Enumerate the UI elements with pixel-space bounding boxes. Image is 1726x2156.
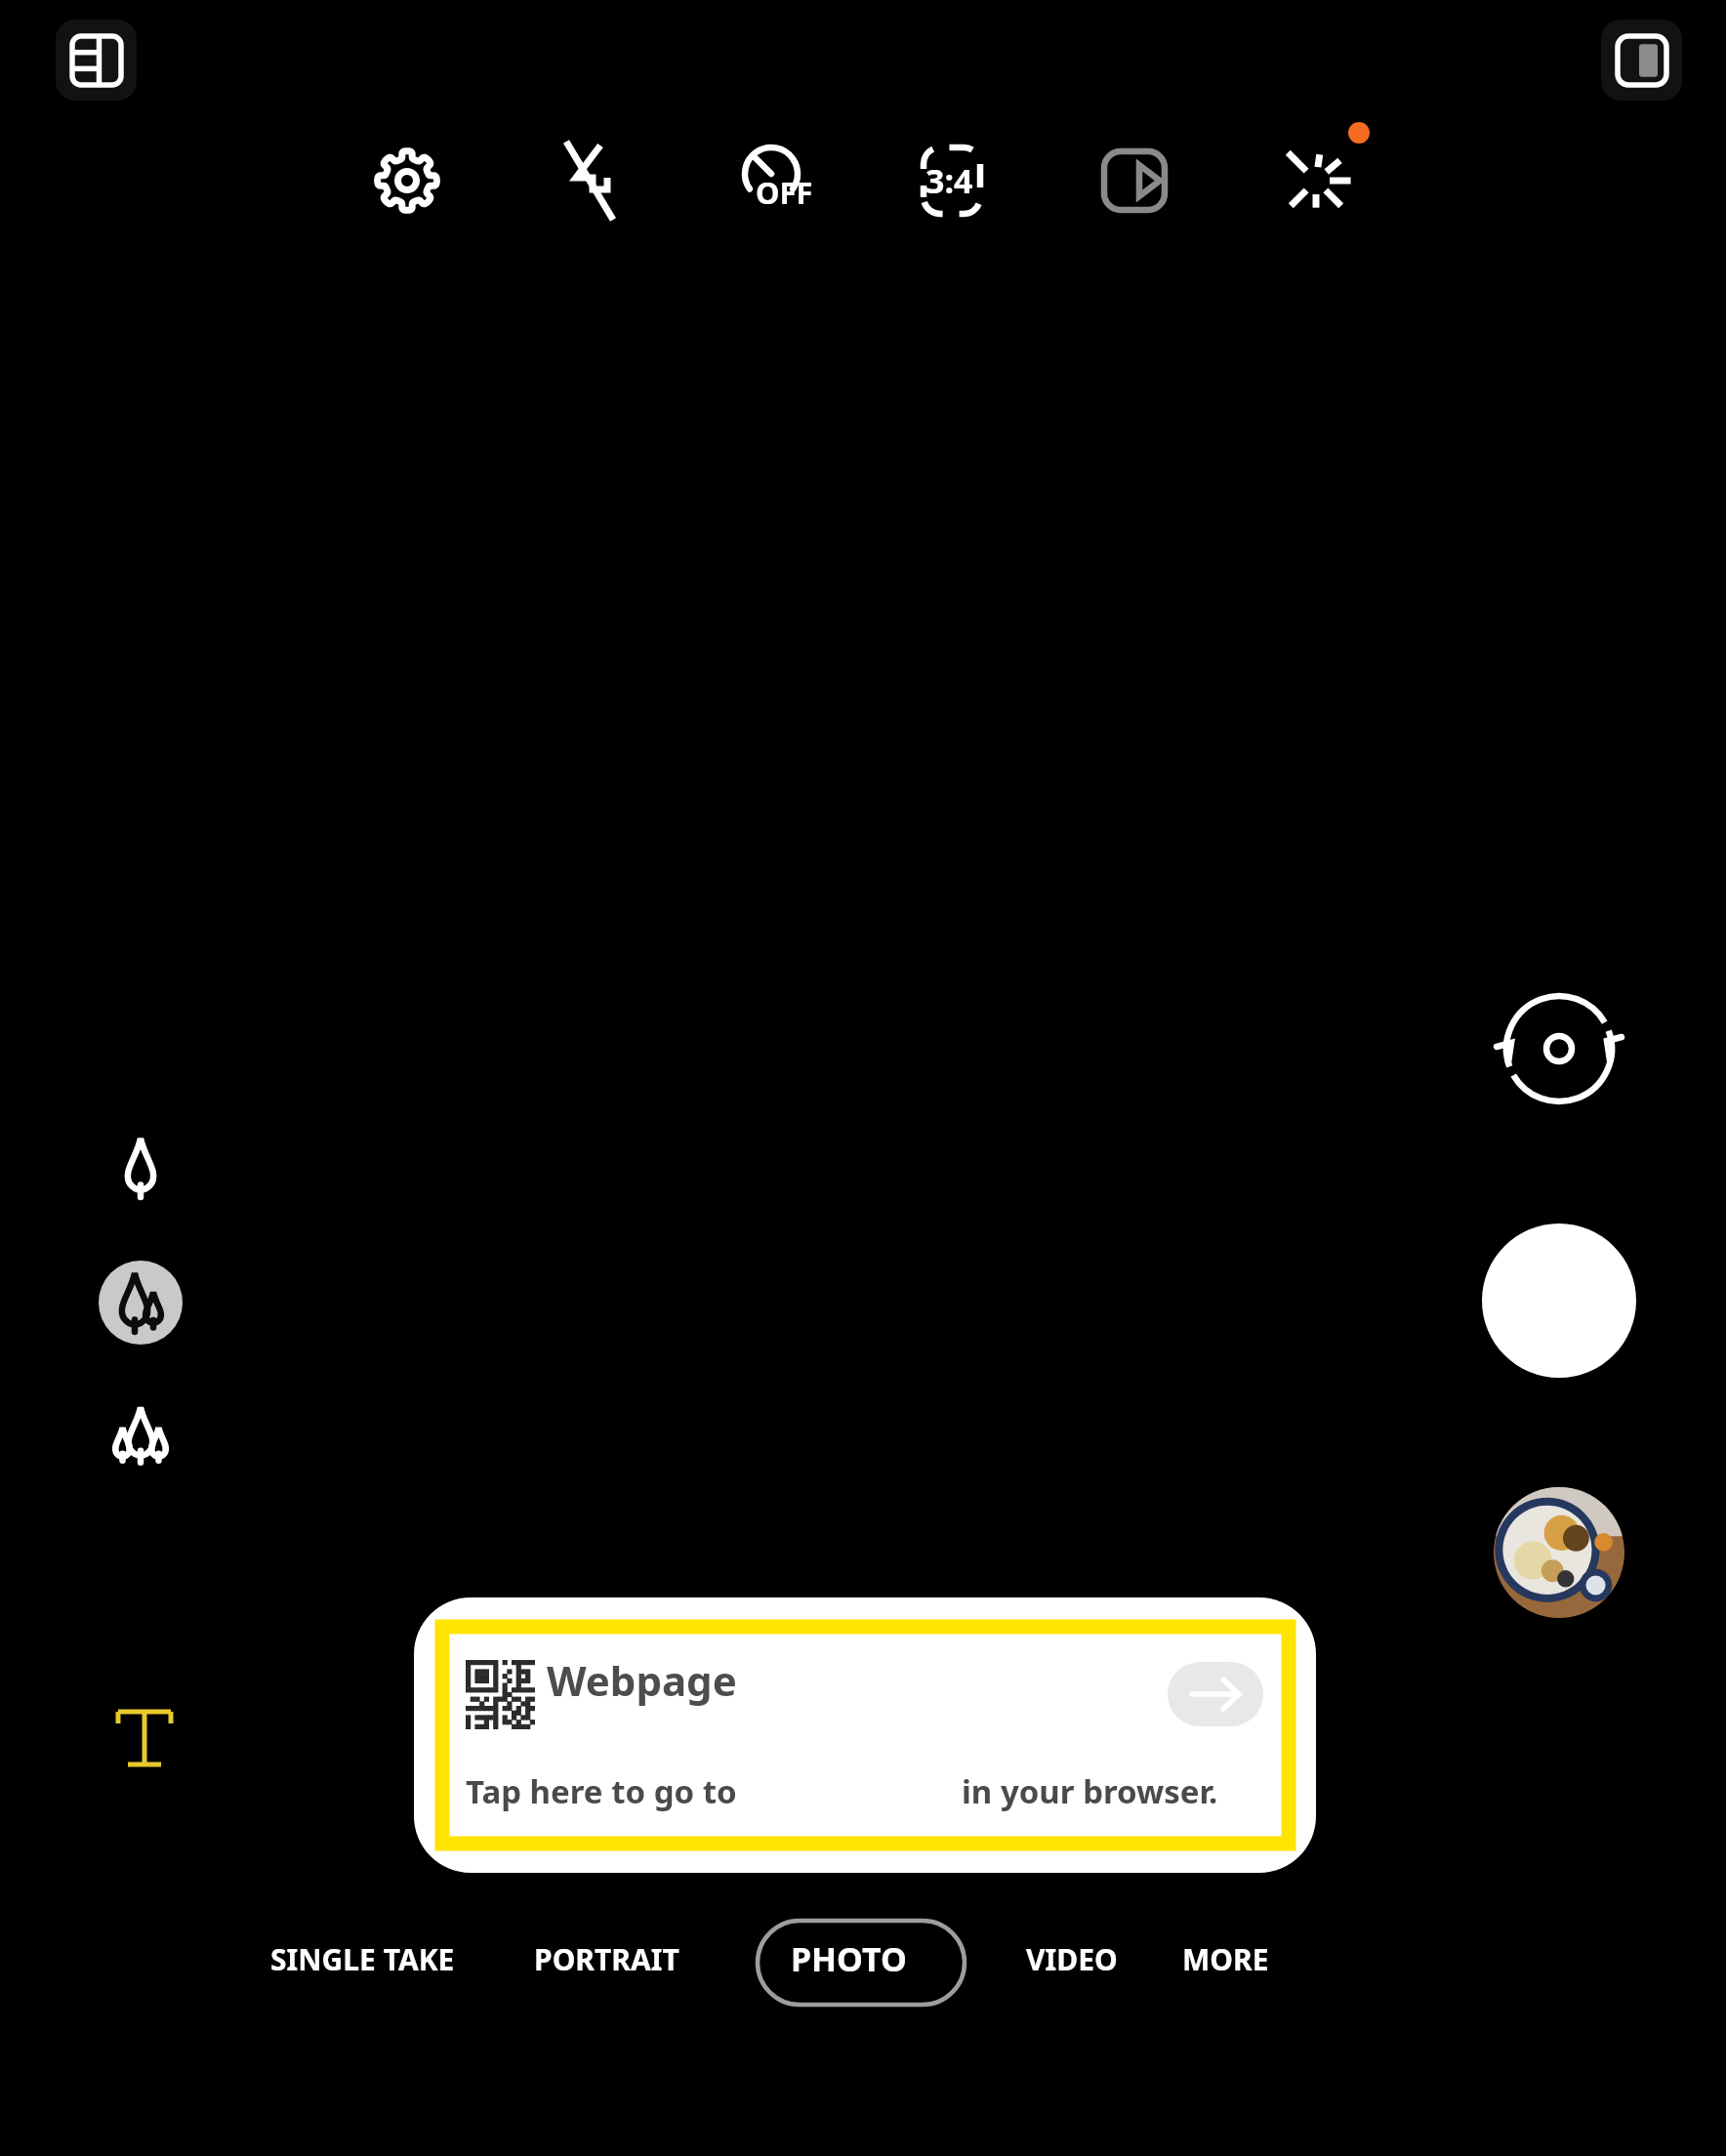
staticText: OFF — [756, 172, 813, 213]
button[interactable] — [414, 1597, 1316, 1873]
staticText: PHOTO — [791, 1936, 907, 1981]
button[interactable] — [758, 1919, 965, 2007]
button[interactable]: Scene optimizer — [1261, 115, 1378, 234]
button[interactable]: Switch camera — [1485, 974, 1633, 1123]
staticText: in your browser. — [962, 1769, 1218, 1813]
staticText: VIDEO — [1026, 1939, 1118, 1979]
button[interactable]: Panel view — [1587, 8, 1703, 113]
button[interactable]: Telephoto zoom — [88, 1385, 193, 1490]
staticText: PORTRAIT — [534, 1939, 679, 1979]
button[interactable]: Timer off — [718, 127, 825, 234]
button[interactable]: Layout options — [39, 8, 154, 113]
button[interactable]: Flash off — [536, 127, 643, 234]
button[interactable] — [1160, 1912, 1298, 2011]
button[interactable]: Open webpage — [1168, 1662, 1263, 1726]
button[interactable]: Gallery — [1488, 1481, 1630, 1624]
button[interactable]: Text detected — [90, 1683, 199, 1793]
button[interactable]: Take photo — [1468, 1210, 1650, 1391]
staticText: Webpage — [547, 1652, 737, 1708]
staticText: SINGLE TAKE — [270, 1939, 455, 1979]
button[interactable]: Ultra wide zoom — [88, 1115, 193, 1221]
staticText: Tap here to go to — [466, 1769, 737, 1813]
button[interactable]: Aspect ratio 3 by 4 — [898, 127, 1006, 234]
staticText: 3:4 — [925, 158, 973, 203]
button[interactable] — [249, 1912, 477, 2011]
button[interactable] — [508, 1912, 693, 2011]
staticText: MORE — [1182, 1939, 1269, 1979]
button[interactable] — [1006, 1912, 1144, 2011]
button[interactable]: Wide zoom — [88, 1250, 193, 1355]
button[interactable]: Motion photo — [1081, 127, 1188, 234]
button[interactable]: Settings — [353, 127, 461, 234]
